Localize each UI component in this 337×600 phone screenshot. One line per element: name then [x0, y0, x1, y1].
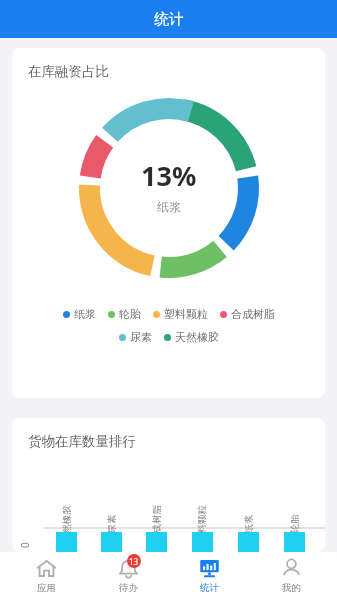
staticText: 在库融资占比: [28, 63, 109, 80]
staticText: 尿素: [130, 330, 152, 344]
button[interactable]: 待办: [92, 554, 164, 598]
staticText: 天然橡胶: [61, 505, 73, 543]
staticText: 合成树脂: [231, 307, 275, 321]
button[interactable]: 尿素: [89, 472, 134, 552]
button[interactable]: 应用: [10, 554, 82, 598]
staticText: 我的: [282, 582, 301, 594]
staticText: 待办: [119, 582, 138, 594]
button[interactable]: 纸浆: [225, 472, 271, 552]
other: 应用: [36, 558, 57, 579]
staticText: 轮胎: [119, 307, 141, 321]
staticText: 统计: [154, 10, 184, 29]
staticText: 0: [18, 542, 32, 548]
staticText: 纸浆: [74, 307, 96, 321]
button[interactable]: 天然橡胶: [164, 330, 219, 344]
staticText: 统计: [200, 582, 219, 594]
button[interactable]: 天然橡胶: [44, 472, 89, 552]
button[interactable]: 轮胎: [108, 307, 141, 321]
button[interactable]: 合成树脂: [134, 472, 179, 552]
button[interactable]: 统计: [173, 554, 245, 598]
staticText: 13: [129, 556, 139, 567]
button[interactable]: 塑料颗粒: [179, 472, 225, 552]
staticText: 尿素: [105, 514, 117, 533]
button[interactable]: 纸浆: [63, 307, 96, 321]
staticText: 纸浆: [242, 514, 254, 533]
staticText: 合成树脂: [151, 505, 163, 543]
button[interactable]: 塑料颗粒: [153, 307, 208, 321]
staticText: 塑料颗粒: [196, 505, 208, 543]
other: 统计: [199, 558, 220, 579]
staticText: 轮胎: [288, 514, 300, 533]
staticText: 应用: [37, 582, 56, 594]
staticText: 货物在库数量排行: [28, 433, 136, 450]
staticText: 13%: [141, 157, 197, 194]
other: 我的: [281, 558, 302, 579]
button[interactable]: 合成树脂: [220, 307, 275, 321]
button[interactable]: 尿素: [119, 330, 152, 344]
staticText: 纸浆: [157, 199, 181, 214]
staticText: 天然橡胶: [175, 330, 219, 344]
button[interactable]: 轮胎: [271, 472, 317, 552]
staticText: 塑料颗粒: [164, 307, 208, 321]
button[interactable]: 我的: [255, 554, 327, 598]
